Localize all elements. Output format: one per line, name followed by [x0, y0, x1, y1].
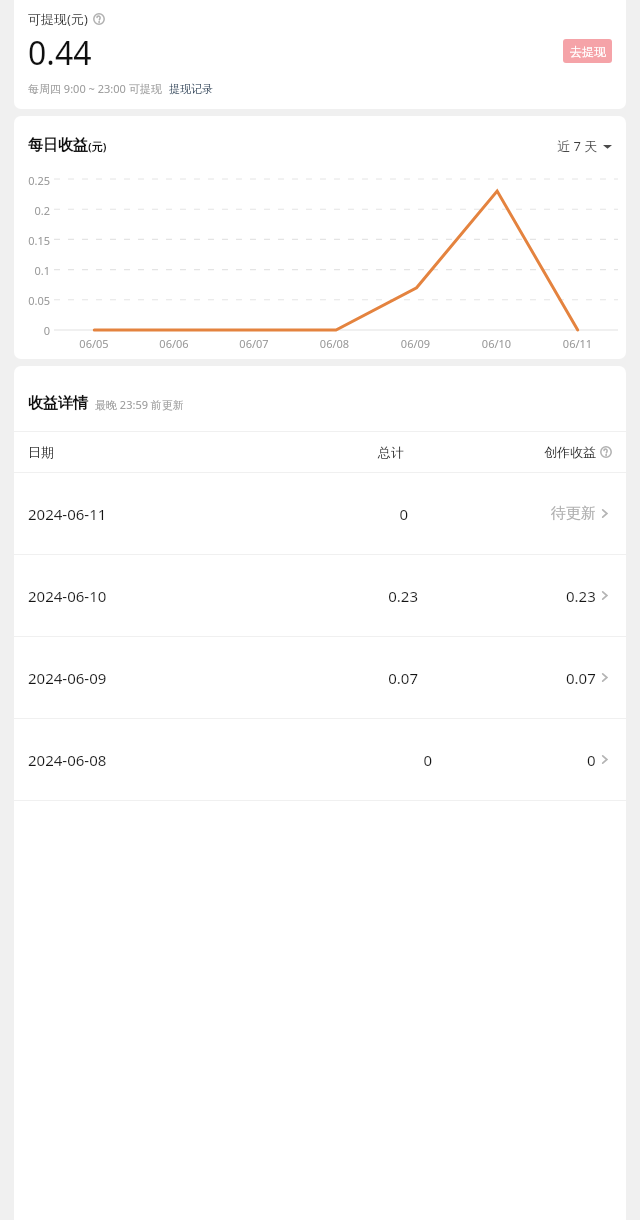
- staticText: 06/09: [375, 336, 456, 351]
- button[interactable]: 2024-06-10: [14, 555, 626, 637]
- staticText: 06/08: [294, 336, 375, 351]
- staticText: 0.07: [312, 668, 418, 688]
- staticText: 每日收益: [28, 136, 88, 155]
- staticText: 最晚 23:59 前更新: [95, 397, 184, 412]
- staticText: 0.23: [566, 586, 596, 606]
- staticText: 待更新: [551, 504, 596, 523]
- staticText: (元): [88, 139, 107, 154]
- staticText: 0.25: [14, 173, 50, 188]
- button[interactable]: 去提现: [563, 39, 612, 63]
- staticText: 06/07: [214, 336, 294, 351]
- button[interactable]: 提现记录: [169, 82, 213, 96]
- staticText: 06/05: [54, 336, 134, 351]
- staticText: 去提现: [570, 44, 606, 59]
- button[interactable]: 2024-06-11: [14, 473, 626, 555]
- staticText: 0: [14, 323, 50, 338]
- staticText: 0.05: [14, 293, 50, 308]
- staticText: 2024-06-08: [28, 750, 326, 770]
- staticText: 0: [587, 750, 596, 770]
- staticText: 06/10: [456, 336, 537, 351]
- staticText: 0.15: [14, 233, 50, 248]
- staticText: 日期: [28, 444, 298, 460]
- staticText: 0: [326, 750, 432, 770]
- staticText: 0.1: [14, 263, 50, 278]
- staticText: 0.07: [566, 668, 596, 688]
- staticText: 提现记录: [169, 82, 213, 96]
- staticText: 收益详情: [28, 394, 88, 413]
- button[interactable]: 2024-06-09: [14, 637, 626, 719]
- staticText: 0.2: [14, 203, 50, 218]
- staticText: 创作收益: [544, 444, 596, 460]
- staticText: 2024-06-11: [28, 504, 302, 524]
- staticText: 总计: [298, 444, 404, 460]
- staticText: 06/11: [537, 336, 618, 351]
- staticText: 2024-06-09: [28, 668, 312, 688]
- button[interactable]: 2024-06-08: [14, 719, 626, 801]
- staticText: 每周四 9:00 ~ 23:00 可提现: [28, 81, 162, 96]
- staticText: 0.23: [312, 586, 418, 606]
- staticText: 0.44: [28, 31, 92, 75]
- staticText: 2024-06-10: [28, 586, 312, 606]
- staticText: 可提现(元): [28, 10, 88, 28]
- staticText: 0: [302, 504, 408, 524]
- staticText: 近 7 天: [557, 137, 598, 155]
- button[interactable]: 近 7 天: [557, 137, 612, 155]
- staticText: 06/06: [134, 336, 214, 351]
